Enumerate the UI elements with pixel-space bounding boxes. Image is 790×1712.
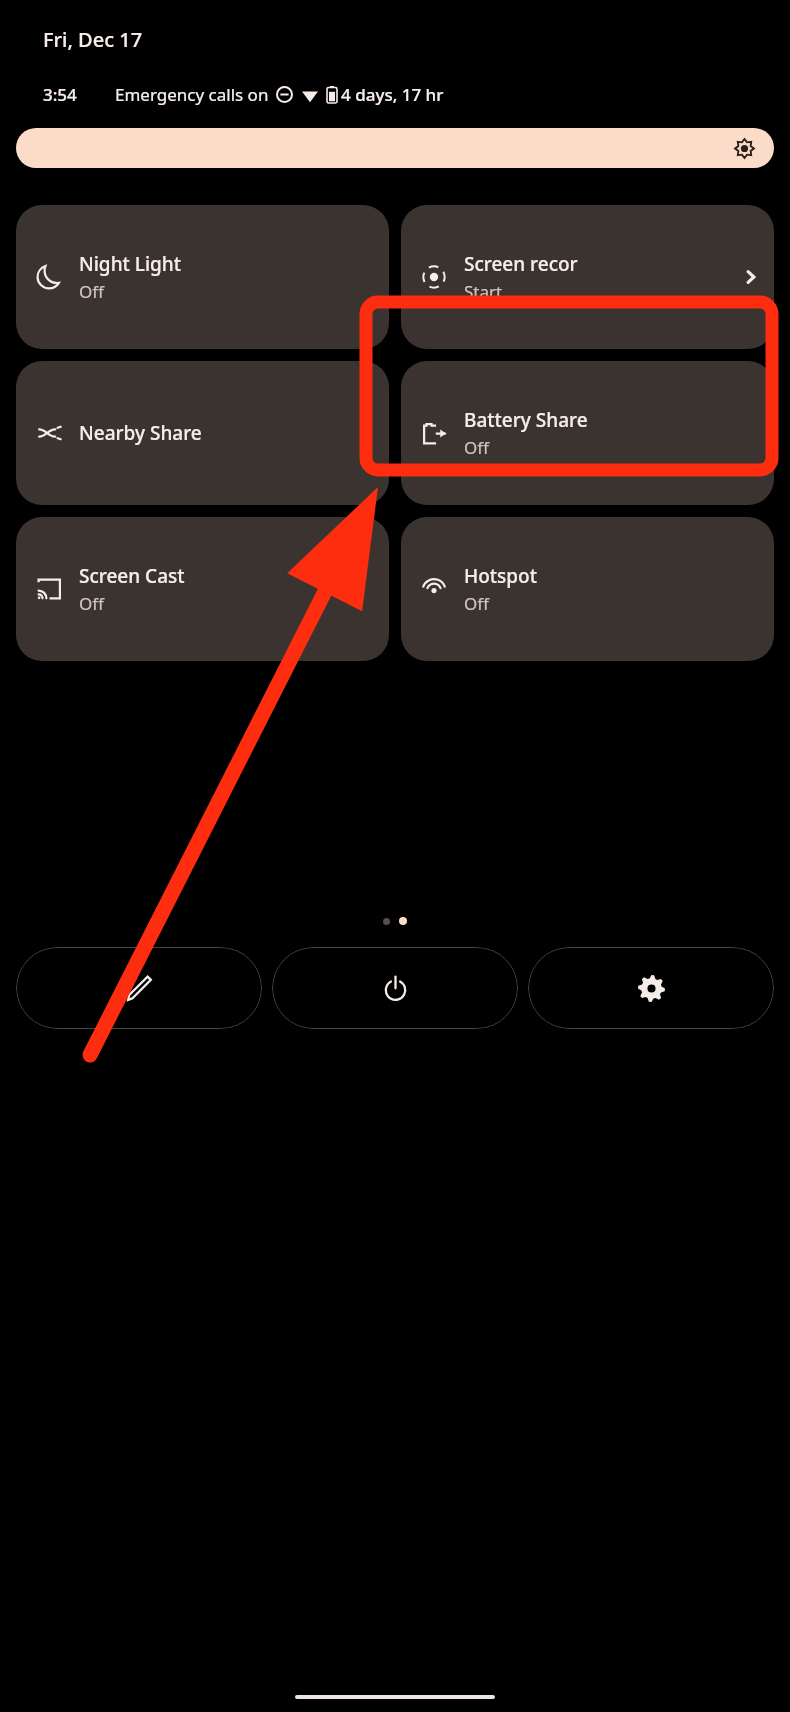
other: Brightness — [735, 139, 754, 158]
button[interactable]: Power — [272, 947, 518, 1029]
staticText: Night Light — [79, 251, 182, 277]
button[interactable]: Battery Share — [401, 361, 774, 505]
staticText: 4 days, 17 hr — [341, 83, 444, 106]
staticText: Fri, Dec 17 — [43, 26, 143, 53]
staticText: Start — [464, 280, 503, 303]
staticText: Off — [79, 280, 104, 303]
button[interactable]: Edit — [16, 947, 262, 1029]
button[interactable]: Settings — [528, 947, 774, 1029]
button[interactable]: Brightness — [16, 128, 774, 168]
button[interactable]: Screen recor — [401, 205, 774, 349]
staticText: Battery Share — [464, 407, 588, 433]
button[interactable]: Screen Cast — [16, 517, 389, 661]
staticText: Off — [464, 436, 489, 459]
staticText: Screen recor — [464, 251, 578, 277]
staticText: Nearby Share — [79, 420, 202, 446]
staticText: Screen Cast — [79, 563, 185, 589]
staticText: Hotspot — [464, 563, 537, 589]
button[interactable]: Nearby Share — [16, 361, 389, 505]
staticText: Off — [464, 592, 489, 615]
button[interactable]: Hotspot — [401, 517, 774, 661]
button[interactable]: Night Light — [16, 205, 389, 349]
staticText: Off — [79, 592, 104, 615]
staticText: 3:54 — [43, 83, 77, 106]
staticText: Emergency calls on — [115, 83, 269, 106]
